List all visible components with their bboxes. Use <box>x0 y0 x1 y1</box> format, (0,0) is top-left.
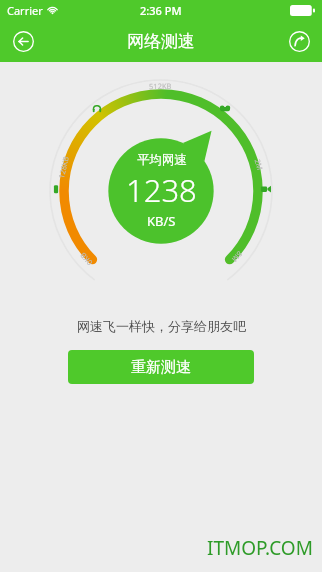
staticText: Carrier <box>7 3 43 18</box>
staticText: 2:36 PM <box>140 3 182 18</box>
button[interactable]: 重新测速 <box>68 350 254 384</box>
staticText: KB/S <box>147 212 176 230</box>
staticText: 0KB <box>78 250 94 268</box>
staticText: 128KB <box>56 155 71 179</box>
staticText: ITMOP.COM <box>207 535 313 561</box>
staticText: 2M <box>253 158 265 172</box>
button[interactable]: Share <box>284 26 314 56</box>
staticText: 网速飞一样快，分享给朋友吧 <box>77 318 246 334</box>
button[interactable]: Back <box>8 26 38 56</box>
staticText: 平均网速 <box>137 152 187 168</box>
staticText: 512KB <box>149 81 172 91</box>
staticText: 网络测速 <box>127 31 195 52</box>
staticText: 重新测速 <box>131 358 191 377</box>
staticText: 1238 <box>126 169 197 211</box>
staticText: 8M <box>229 249 245 265</box>
